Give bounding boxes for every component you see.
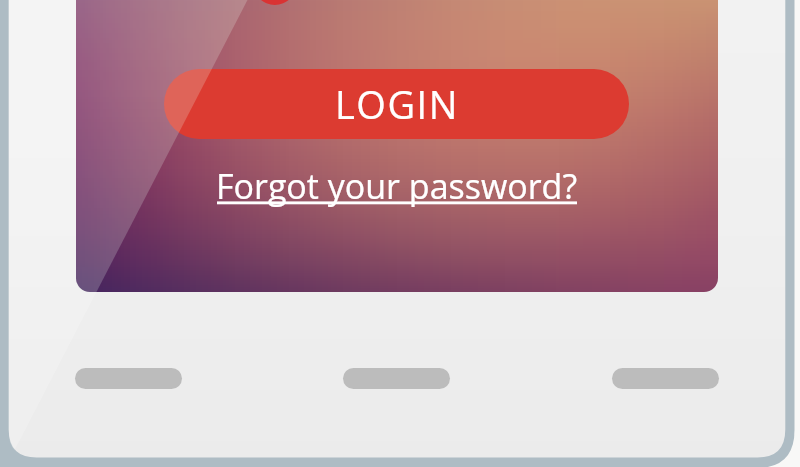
button[interactable]: Profile <box>612 368 719 389</box>
button[interactable]: LOGIN <box>164 69 629 139</box>
button[interactable]: Home <box>75 368 182 389</box>
staticText: LOGIN <box>335 78 459 130</box>
staticText: Forgot your password? <box>216 163 578 209</box>
button[interactable]: Forgot your password? <box>216 163 578 209</box>
button[interactable]: Search <box>343 368 450 389</box>
